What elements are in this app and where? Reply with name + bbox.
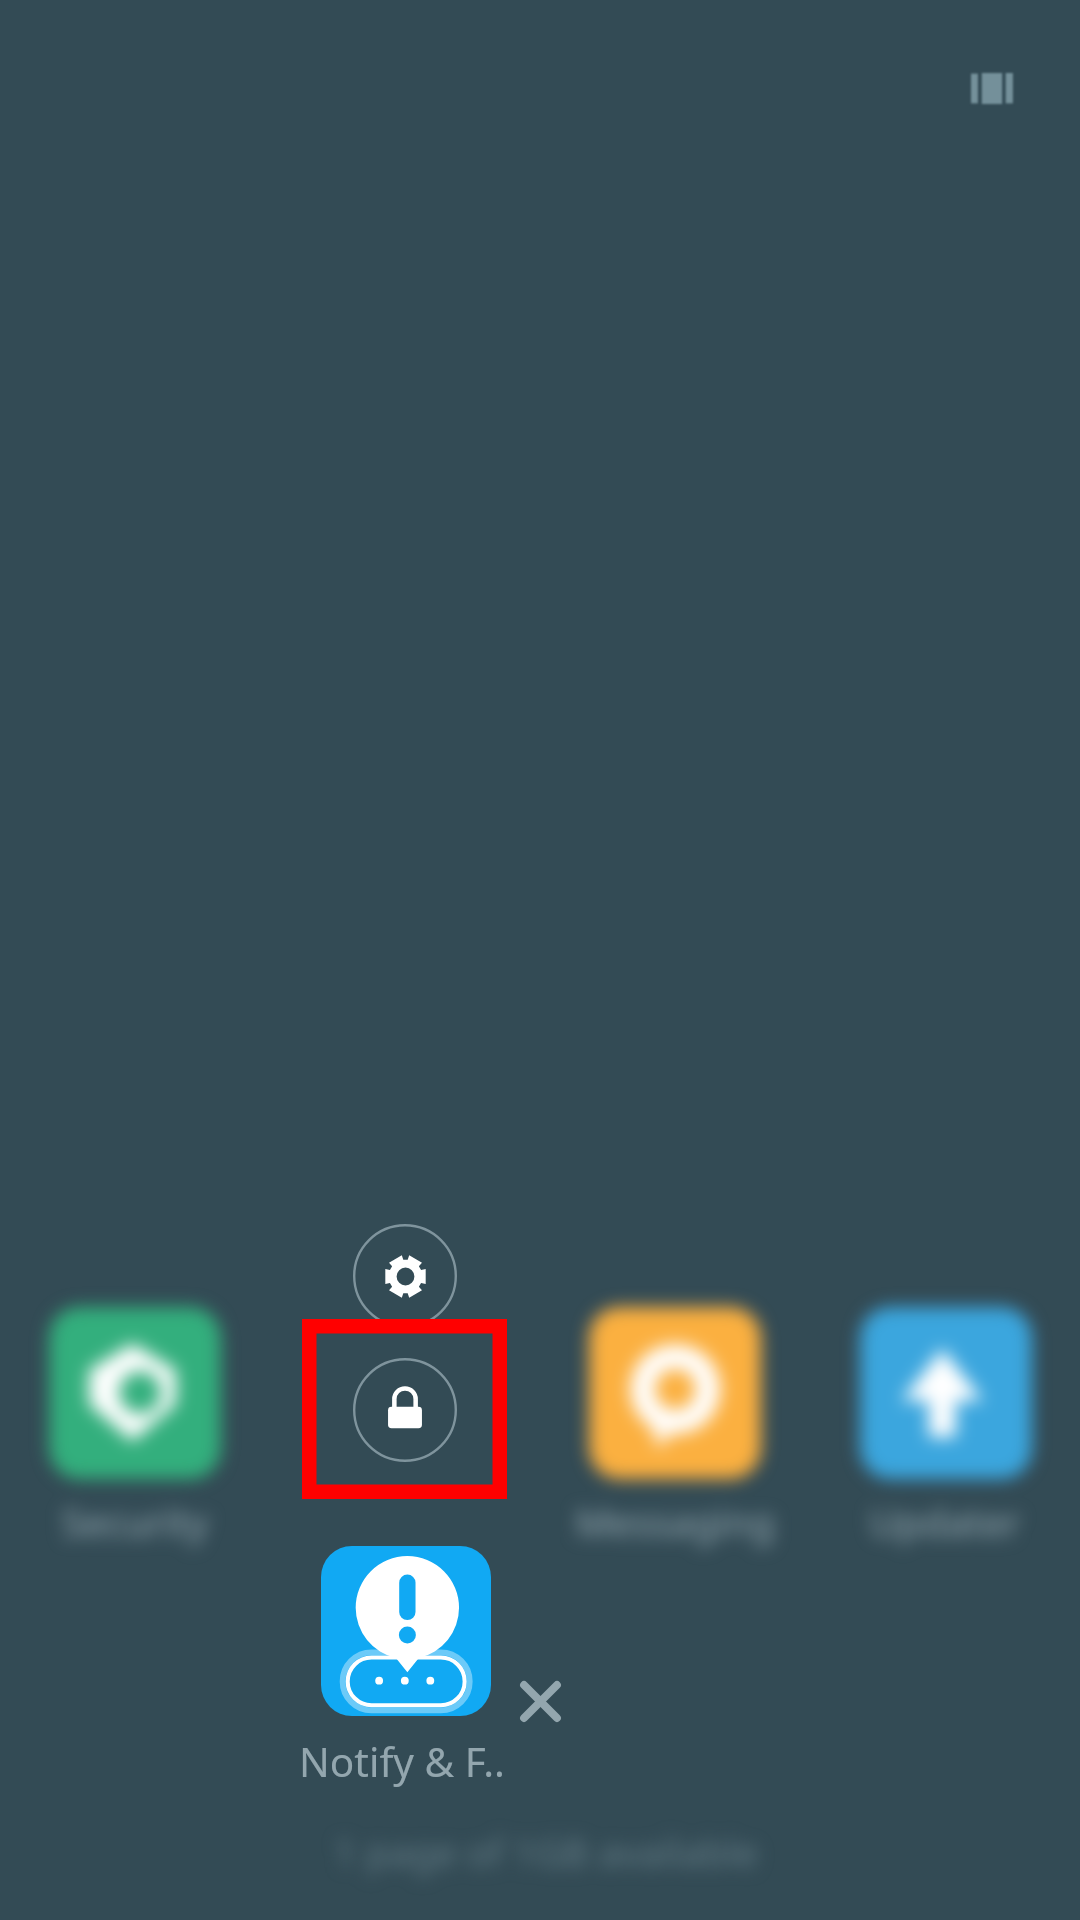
- button[interactable]: Lock: [353, 1358, 457, 1462]
- button[interactable]: Messaging: [589, 1307, 761, 1479]
- staticText: Messaging: [540, 1495, 810, 1548]
- button[interactable]: Remove: [505, 1666, 575, 1736]
- staticText: 1 page of 1GB available: [6, 1826, 1080, 1878]
- staticText: Notify & F..: [282, 1734, 522, 1789]
- button[interactable]: Change layout: [951, 52, 1033, 124]
- button[interactable]: Notify and Fitness: [321, 1546, 491, 1716]
- button[interactable]: Security: [49, 1307, 221, 1479]
- button[interactable]: Settings: [353, 1224, 457, 1328]
- button[interactable]: Updater: [860, 1307, 1032, 1479]
- staticText: Security: [0, 1495, 270, 1548]
- staticText: Updater: [810, 1495, 1080, 1548]
- button[interactable]: Notify & F..: [282, 1734, 522, 1789]
